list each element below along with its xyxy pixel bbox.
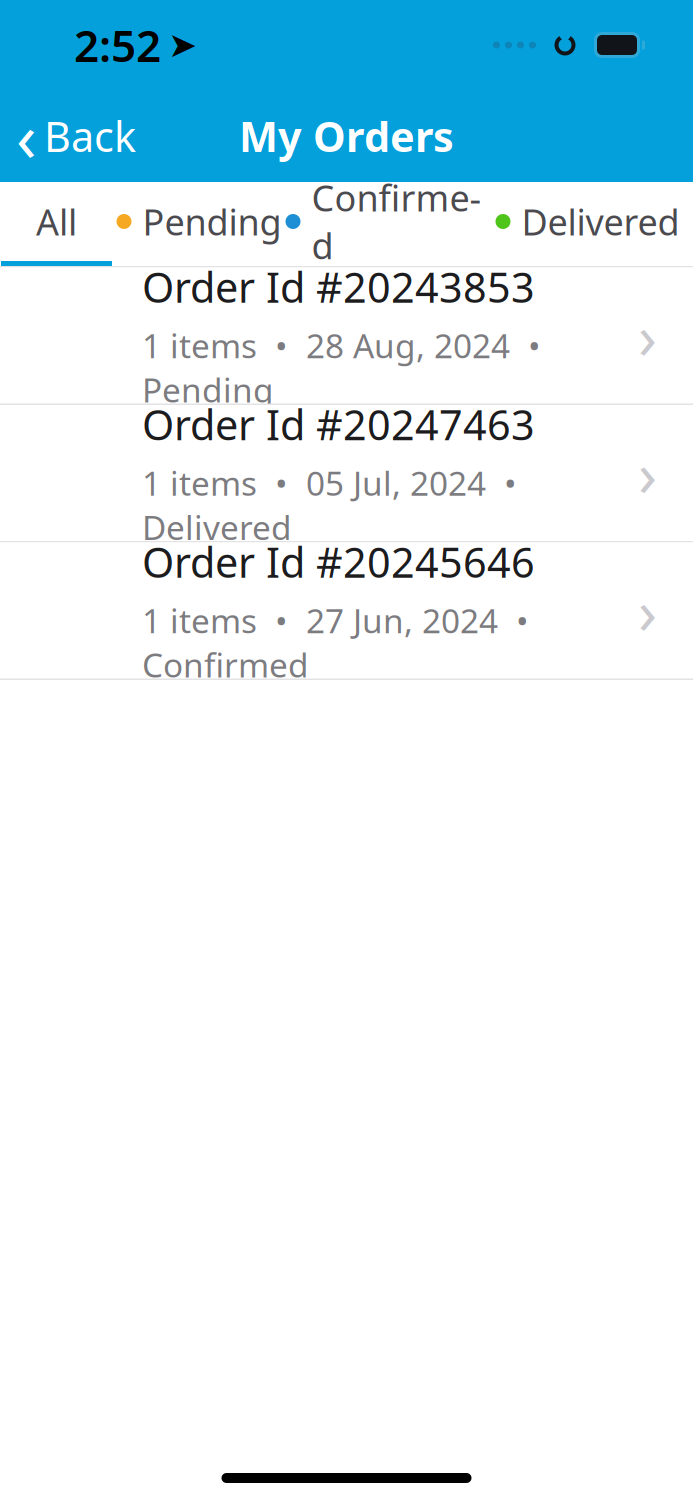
staticText: Confirmed [311, 174, 481, 269]
button[interactable]: Pending [113, 182, 285, 266]
staticText: › [638, 295, 657, 376]
button[interactable]: Order Id #20243853 [0, 267, 693, 405]
staticText: 1 items • 28 Aug, 2024 • Pending [142, 323, 550, 412]
staticText: Pending [142, 198, 281, 245]
staticText: Delivered [521, 198, 679, 245]
staticText: ➤ [168, 25, 197, 65]
staticText: › [638, 570, 657, 651]
staticText: 1 items • 27 Jun, 2024 • Confirmed [142, 598, 538, 687]
staticText: Back [44, 109, 136, 163]
staticText: Order Id #20247463 [142, 397, 535, 452]
staticText: ‹ [16, 92, 37, 180]
button[interactable]: ‹ [0, 90, 152, 182]
button[interactable]: Order Id #20245646 [0, 542, 693, 680]
staticText: 2:52 [74, 16, 161, 74]
staticText: Order Id #20243853 [142, 259, 535, 314]
staticText: Order Id #20245646 [142, 534, 535, 589]
button[interactable]: Confirmed [285, 182, 482, 266]
button[interactable]: Delivered [482, 182, 693, 266]
button[interactable]: Order Id #20247463 [0, 405, 693, 542]
staticText: My Orders [239, 109, 454, 163]
staticText: › [638, 432, 657, 514]
button[interactable]: All [0, 182, 113, 266]
staticText: All [36, 198, 77, 245]
staticText: 1 items • 05 Jul, 2024 • Delivered [142, 461, 526, 549]
